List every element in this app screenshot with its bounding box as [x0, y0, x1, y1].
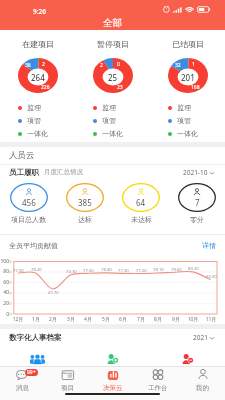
staticText: 详情 [202, 241, 216, 250]
staticText: 64 [136, 197, 146, 208]
staticText: 员工履职 [9, 168, 39, 177]
staticText: 决策云 [103, 384, 123, 392]
staticText: 36 [25, 62, 31, 69]
staticText: 消息 [16, 384, 29, 392]
staticText: 25 [108, 72, 118, 83]
button[interactable]: 99+ [0, 367, 45, 393]
button[interactable]: 2021-10 [183, 168, 216, 177]
staticText: 工作台 [148, 384, 168, 392]
staticText: 12月 [11, 316, 25, 323]
staticText: 全部 [103, 17, 122, 29]
staticText: 项管 [102, 116, 116, 125]
staticText: 5月 [99, 316, 113, 323]
staticText: 2 [42, 61, 45, 68]
staticText: 32 [175, 62, 181, 69]
staticText: 监理 [102, 103, 116, 112]
staticText: 456 [22, 197, 36, 208]
staticText: 0 [0, 311, 9, 318]
staticText: 月度汇总情况 [44, 168, 83, 176]
staticText: 项管 [27, 116, 41, 125]
staticText: 零分 [190, 215, 204, 224]
staticText: 20 [0, 300, 9, 307]
staticText: 一体化 [27, 129, 48, 138]
staticText: 77.50 [13, 268, 24, 274]
staticText: 201 [181, 72, 195, 83]
staticText: 78.40 [101, 267, 112, 273]
button[interactable]: 详情 [202, 241, 216, 250]
staticText: 60 [0, 279, 9, 286]
staticText: 100 [0, 258, 9, 265]
staticText: 数字化人事档案 [9, 333, 62, 342]
staticText: 168 [191, 84, 200, 91]
staticText: 项目总人数 [11, 215, 46, 224]
staticText: 2021 [193, 333, 208, 342]
staticText: 78.20 [31, 267, 42, 273]
staticText: 2021-10 [183, 168, 208, 177]
staticText: 8月 [151, 316, 165, 323]
staticText: 385 [78, 197, 92, 208]
staticText: 人员云 [9, 150, 35, 161]
button[interactable]: 项目 [45, 367, 90, 393]
staticText: 47.70 [48, 290, 59, 296]
staticText: 监理 [177, 103, 191, 112]
button[interactable]: 暂停项目 [75, 39, 150, 140]
staticText: 77.30 [118, 268, 129, 274]
staticText: 10月 [186, 316, 200, 323]
staticText: 项目 [61, 384, 74, 392]
staticText: 项管 [177, 116, 191, 125]
button[interactable]: 我的 [180, 367, 225, 393]
staticText: 达标 [78, 215, 92, 224]
staticText: 65.50 [206, 274, 217, 280]
staticText: 80.20 [188, 266, 199, 272]
staticText: 一体化 [102, 129, 123, 138]
staticText: 99+ [27, 369, 36, 376]
button[interactable]: 7 [169, 183, 225, 224]
staticText: 77.50 [83, 268, 94, 274]
staticText: 2月 [46, 316, 60, 323]
staticText: 40 [0, 289, 9, 296]
staticText: 1月 [29, 316, 43, 323]
button[interactable]: 385 [57, 183, 113, 224]
button[interactable]: 2021 [193, 333, 216, 342]
staticText: 7月 [134, 316, 148, 323]
staticText: 7 [195, 197, 200, 208]
staticText: 4月 [81, 316, 95, 323]
button[interactable]: 456 [0, 183, 57, 224]
staticText: 78.10 [153, 267, 164, 273]
staticText: 9月 [169, 316, 183, 323]
staticText: 暂停项目 [97, 39, 129, 49]
button[interactable]: 决策云 [90, 367, 135, 393]
staticText: 9:26 [33, 7, 46, 16]
staticText: 74.30 [66, 269, 77, 275]
button[interactable]: 在建项目 [0, 39, 75, 140]
staticText: 已结项目 [172, 39, 204, 49]
staticText: 在建项目 [22, 39, 54, 49]
staticText: 226 [41, 84, 50, 91]
staticText: 11月 [204, 316, 218, 323]
staticText: 全员平均贡献值 [9, 241, 58, 250]
staticText: 0 [117, 61, 120, 68]
staticText: 77.20 [136, 268, 147, 274]
button[interactable]: 已结项目 [150, 39, 225, 140]
button[interactable]: 工作台 [135, 367, 180, 393]
staticText: 264 [31, 72, 45, 83]
staticText: 2 [100, 62, 103, 69]
button[interactable]: 64 [113, 183, 169, 224]
staticText: 3月 [64, 316, 78, 323]
staticText: 未达标 [131, 215, 152, 224]
staticText: 1 [192, 61, 195, 68]
staticText: 我的 [196, 384, 209, 392]
staticText: 6月 [116, 316, 130, 323]
staticText: 一体化 [177, 129, 198, 138]
staticText: 79.60 [171, 267, 182, 273]
staticText: 监理 [27, 103, 41, 112]
staticText: 80 [0, 268, 9, 275]
staticText: 23 [117, 84, 123, 91]
